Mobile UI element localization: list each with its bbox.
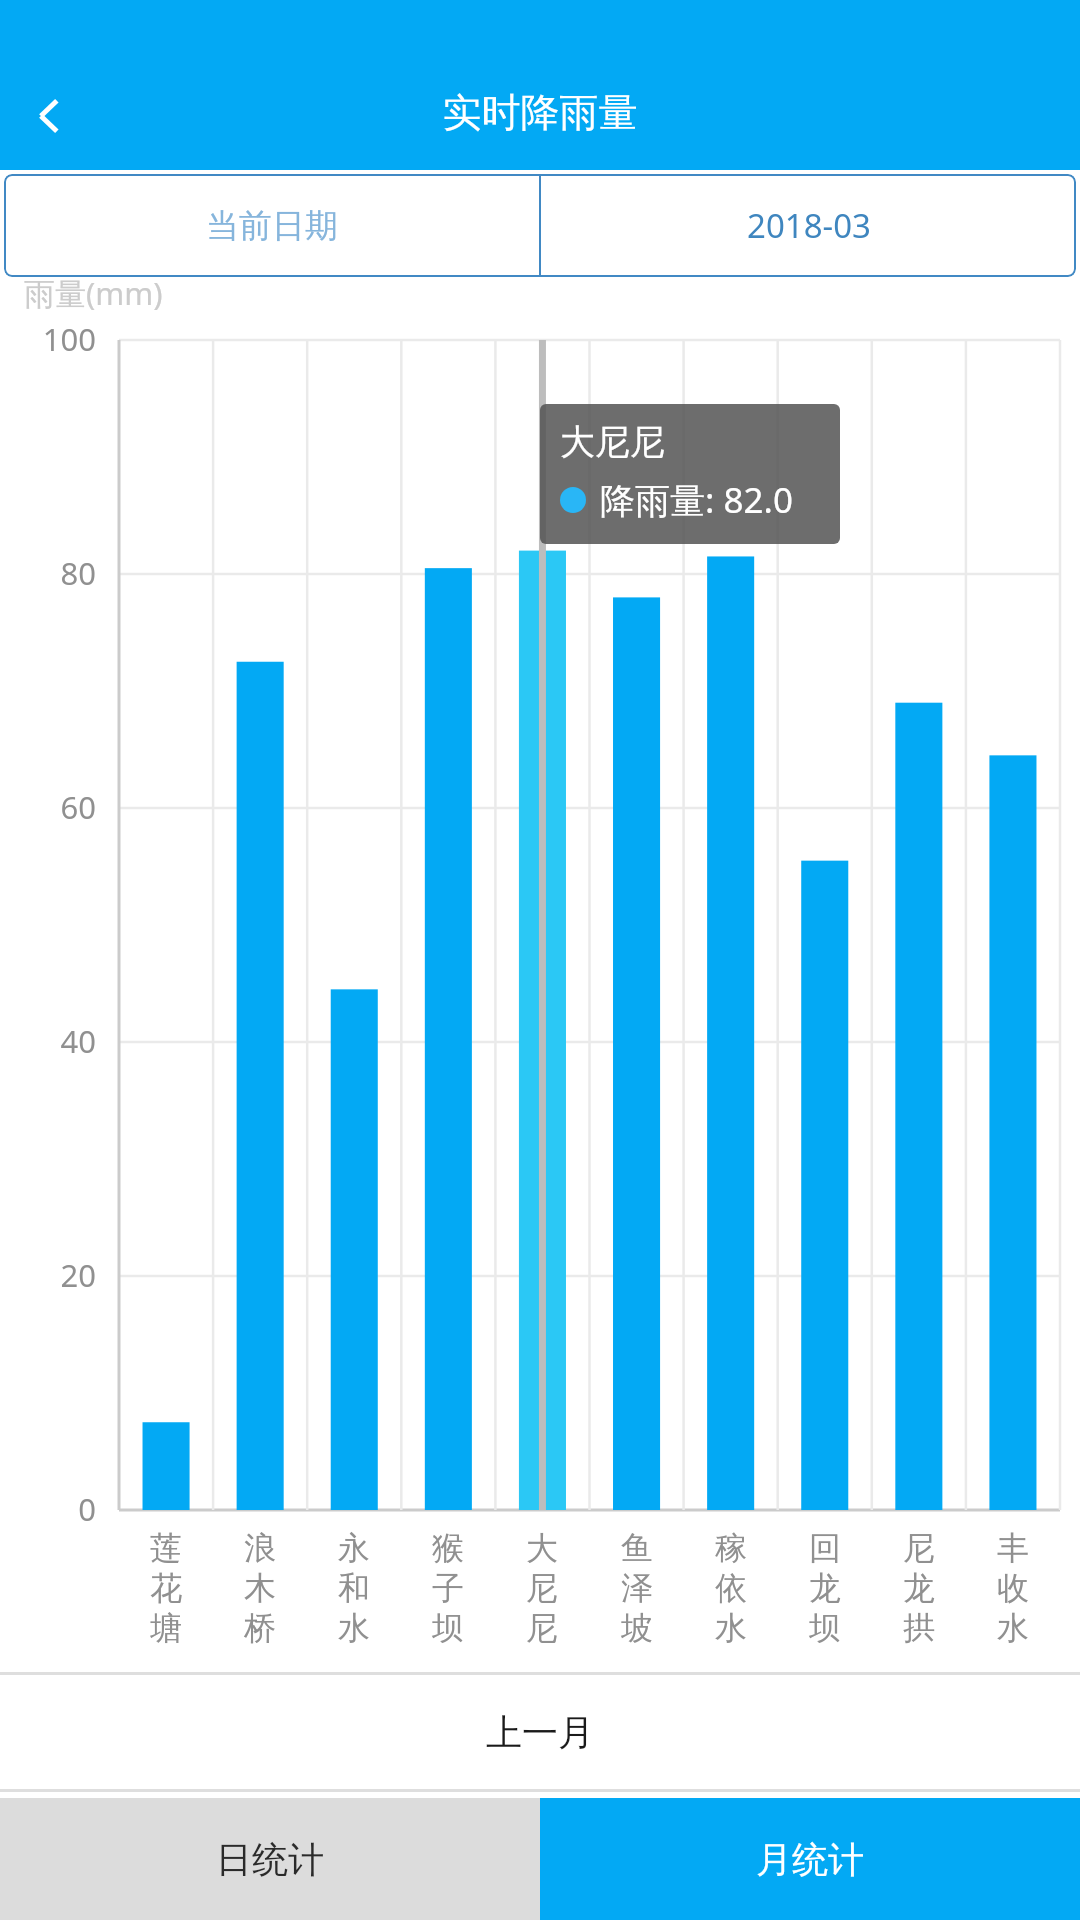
staticText: 实时降雨量 xyxy=(0,88,1080,137)
button[interactable]: 永 xyxy=(307,1528,401,1648)
staticText: 塘 xyxy=(150,1608,182,1648)
staticText: 40 xyxy=(0,1020,96,1062)
staticText: 依 xyxy=(715,1568,747,1608)
staticText: 日统计 xyxy=(216,1837,324,1882)
staticText: 子 xyxy=(432,1568,464,1608)
staticText: 莲 xyxy=(150,1528,182,1568)
staticText: 雨量(mm) xyxy=(24,272,163,314)
button[interactable]: 大 xyxy=(495,1528,589,1648)
staticText: 和 xyxy=(338,1568,370,1608)
staticText: 上一月 xyxy=(486,1710,594,1755)
button[interactable]: 猴 xyxy=(401,1528,495,1648)
button[interactable]: 尼 xyxy=(872,1528,966,1648)
staticText: 尼 xyxy=(903,1528,935,1568)
staticText: 龙 xyxy=(903,1568,935,1608)
button[interactable]: Back xyxy=(14,80,86,152)
staticText: 水 xyxy=(997,1608,1029,1648)
button[interactable]: 回 xyxy=(778,1528,872,1648)
staticText: 100 xyxy=(0,318,96,360)
staticText: 猴 xyxy=(432,1528,464,1568)
staticText: 大尼尼 xyxy=(560,420,665,464)
staticText: 当前日期 xyxy=(206,205,338,247)
staticText: 坝 xyxy=(809,1608,841,1648)
staticText: 水 xyxy=(715,1608,747,1648)
button[interactable]: 丰 xyxy=(966,1528,1060,1648)
staticText: 月统计 xyxy=(756,1837,864,1882)
button[interactable]: 2018-03 xyxy=(541,174,1076,277)
button[interactable]: 当前日期 xyxy=(4,174,539,277)
staticText: 水 xyxy=(338,1608,370,1648)
staticText: 永 xyxy=(338,1528,370,1568)
staticText: 浪 xyxy=(244,1528,276,1568)
staticText: 桥 xyxy=(244,1608,276,1648)
button[interactable]: 鱼 xyxy=(590,1528,684,1648)
staticText: 80 xyxy=(0,552,96,594)
staticText: 2018-03 xyxy=(747,203,871,248)
staticText: 木 xyxy=(244,1568,276,1608)
staticText: 丰 xyxy=(997,1528,1029,1568)
button[interactable]: 莲 xyxy=(119,1528,213,1648)
staticText: 大 xyxy=(526,1528,558,1568)
button[interactable]: 稼 xyxy=(684,1528,778,1648)
button[interactable]: 月统计 xyxy=(540,1798,1080,1920)
staticText: 20 xyxy=(0,1254,96,1296)
staticText: 尼 xyxy=(526,1568,558,1608)
button[interactable]: 浪 xyxy=(213,1528,307,1648)
staticText: 回 xyxy=(809,1528,841,1568)
staticText: 降雨量: 82.0 xyxy=(600,476,793,524)
staticText: 拱 xyxy=(903,1608,935,1648)
button[interactable]: 日统计 xyxy=(0,1798,540,1920)
staticText: 尼 xyxy=(526,1608,558,1648)
staticText: 泽 xyxy=(621,1568,653,1608)
staticText: 坡 xyxy=(621,1608,653,1648)
staticText: 0 xyxy=(0,1488,96,1530)
staticText: 龙 xyxy=(809,1568,841,1608)
staticText: 收 xyxy=(997,1568,1029,1608)
staticText: 稼 xyxy=(715,1528,747,1568)
staticText: 花 xyxy=(150,1568,182,1608)
staticText: 60 xyxy=(0,786,96,828)
button[interactable]: 上一月 xyxy=(0,1675,1080,1789)
staticText: 坝 xyxy=(432,1608,464,1648)
staticText: 鱼 xyxy=(621,1528,653,1568)
